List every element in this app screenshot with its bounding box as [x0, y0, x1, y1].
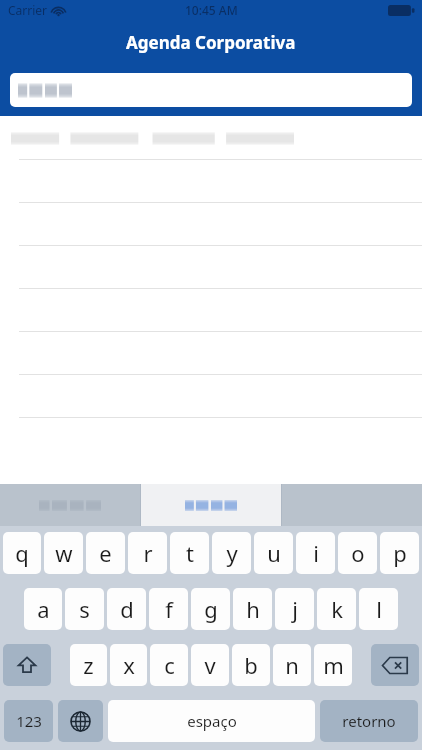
staticText: f [165, 594, 173, 624]
button[interactable] [0, 332, 422, 375]
staticText: g [204, 594, 218, 624]
button[interactable]: 123 [4, 700, 53, 742]
button[interactable]: r [128, 532, 167, 574]
button[interactable]: Shift [3, 644, 51, 686]
staticText: e [99, 538, 112, 568]
button[interactable] [0, 246, 422, 289]
button[interactable] [0, 160, 422, 203]
staticText: h [246, 594, 260, 624]
button[interactable] [10, 73, 412, 107]
staticText: espaço [187, 711, 237, 731]
staticText: o [351, 538, 365, 568]
button[interactable]: b [232, 644, 270, 686]
button[interactable]: y [212, 532, 251, 574]
button[interactable]: i [296, 532, 335, 574]
staticText: s [79, 594, 90, 624]
button[interactable]: o [338, 532, 377, 574]
button[interactable]: d [107, 588, 146, 630]
staticText: 10:45 AM [185, 2, 238, 18]
staticText: n [285, 650, 299, 680]
button[interactable]: w [44, 532, 83, 574]
staticText: d [120, 594, 134, 624]
button[interactable]: c [150, 644, 188, 686]
staticText: retorno [342, 711, 396, 731]
staticText: y [226, 538, 238, 568]
staticText: Carrier [8, 2, 48, 18]
button[interactable]: p [380, 532, 419, 574]
staticText: x [123, 650, 135, 680]
button[interactable]: f [149, 588, 188, 630]
button[interactable] [0, 203, 422, 246]
staticText: 123 [16, 711, 42, 731]
button[interactable]: x [110, 644, 147, 686]
button[interactable]: espaço [108, 700, 315, 742]
button[interactable]: v [191, 644, 229, 686]
staticText: v [204, 650, 216, 680]
button[interactable] [0, 289, 422, 332]
staticText: w [55, 538, 73, 568]
button[interactable]: Change keyboard language [58, 700, 103, 742]
button[interactable]: retorno [320, 700, 418, 742]
button[interactable]: m [314, 644, 352, 686]
staticText: c [164, 650, 175, 680]
button[interactable]: a [24, 588, 62, 630]
button[interactable]: l [359, 588, 398, 630]
button[interactable]: z [70, 644, 107, 686]
staticText: b [244, 650, 258, 680]
button[interactable]: n [273, 644, 311, 686]
button[interactable]: j [275, 588, 314, 630]
staticText: j [292, 594, 298, 624]
staticText: k [331, 594, 343, 624]
button[interactable]: Backspace [371, 644, 419, 686]
staticText: q [15, 538, 29, 568]
staticText: Agenda Corporativa [126, 31, 296, 54]
button[interactable]: t [170, 532, 209, 574]
staticText: t [186, 538, 194, 568]
staticText: l [376, 594, 382, 624]
button[interactable] [0, 116, 422, 160]
staticText: p [393, 538, 407, 568]
staticText: u [267, 538, 281, 568]
staticText: r [143, 538, 153, 568]
staticText: m [323, 650, 344, 680]
button[interactable]: h [233, 588, 272, 630]
staticText: z [83, 650, 94, 680]
staticText: i [313, 538, 319, 568]
button[interactable] [0, 375, 422, 418]
button[interactable]: k [317, 588, 356, 630]
staticText: a [37, 594, 50, 624]
button[interactable] [0, 484, 140, 526]
button[interactable]: u [254, 532, 293, 574]
button[interactable]: q [3, 532, 41, 574]
button[interactable]: s [65, 588, 104, 630]
button[interactable]: g [191, 588, 230, 630]
button[interactable]: e [86, 532, 125, 574]
button[interactable] [141, 484, 281, 526]
